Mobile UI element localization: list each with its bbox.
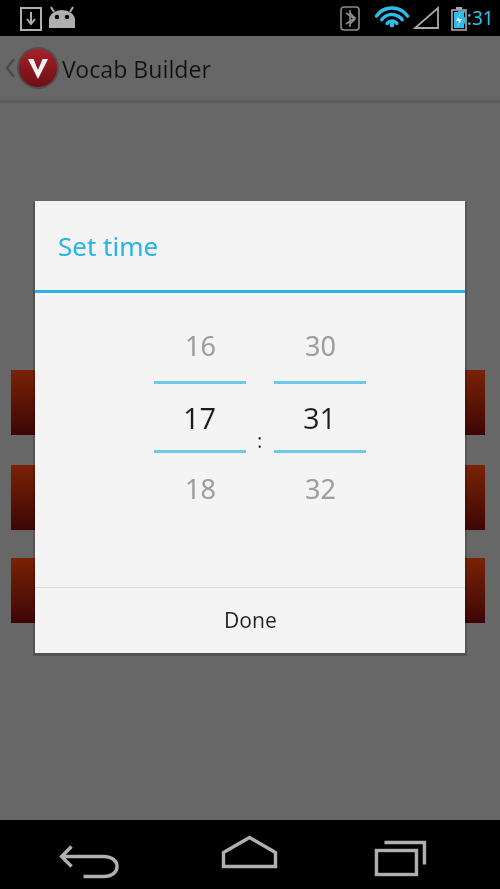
- button[interactable]: [11, 465, 485, 530]
- button[interactable]: Done: [35, 588, 465, 653]
- staticText: 17: [183, 398, 217, 437]
- staticText: Done: [224, 606, 277, 635]
- staticText: 16: [185, 327, 216, 364]
- staticText: 5:31: [456, 5, 494, 31]
- staticText: 32: [305, 470, 336, 507]
- staticText: Set time: [58, 228, 159, 263]
- button[interactable]: 31: [274, 384, 366, 450]
- button[interactable]: 30: [274, 318, 366, 373]
- staticText: 31: [303, 398, 337, 437]
- button[interactable]: Back: [0, 820, 166, 889]
- button[interactable]: Home: [166, 820, 333, 889]
- button[interactable]: [11, 558, 485, 623]
- button[interactable]: Navigate up: [0, 36, 62, 100]
- button[interactable]: 17: [154, 384, 246, 450]
- button[interactable]: [11, 370, 485, 435]
- staticText: :: [257, 427, 263, 454]
- button[interactable]: 16: [154, 318, 246, 373]
- button[interactable]: Recents: [333, 820, 500, 889]
- staticText: 18: [185, 470, 216, 507]
- staticText: Vocab Builder: [62, 53, 211, 84]
- button[interactable]: 18: [154, 461, 246, 516]
- button[interactable]: 32: [274, 461, 366, 516]
- staticText: 30: [305, 327, 336, 364]
